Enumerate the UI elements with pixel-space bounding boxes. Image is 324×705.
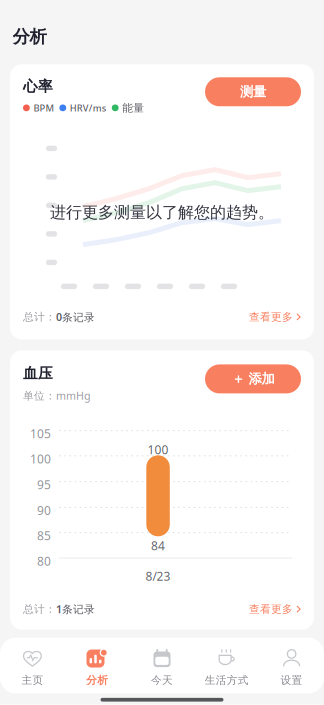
staticText: 90: [37, 502, 51, 518]
staticText: 测量: [240, 84, 266, 100]
staticText: 1条记录: [56, 602, 95, 616]
staticText: 分析: [86, 673, 108, 687]
staticText: 心率: [23, 77, 53, 95]
staticText: 查看更多: [249, 310, 293, 323]
staticText: 今天: [151, 673, 173, 687]
staticText: 84: [151, 538, 165, 553]
staticText: 血压: [23, 364, 53, 382]
staticText: ＋ 添加: [231, 371, 274, 387]
staticText: 总计：: [23, 310, 56, 323]
staticText: 进行更多测量以了解您的趋势。: [50, 203, 274, 222]
button[interactable]: 主页: [0, 637, 65, 694]
staticText: 100: [30, 451, 51, 467]
staticText: 80: [37, 553, 51, 569]
staticText: 0条记录: [56, 310, 95, 324]
button[interactable]: 查看更多: [249, 602, 301, 616]
staticText: 查看更多: [249, 602, 293, 616]
button[interactable]: 测量: [205, 77, 301, 106]
button[interactable]: 今天: [130, 637, 194, 694]
staticText: 主页: [21, 673, 43, 687]
staticText: 设置: [281, 673, 303, 687]
staticText: 100: [147, 442, 168, 457]
staticText: 总计：: [23, 602, 56, 616]
button[interactable]: 生活方式: [194, 637, 259, 694]
staticText: 能量: [122, 101, 144, 114]
staticText: 105: [30, 426, 51, 441]
button[interactable]: 查看更多: [249, 310, 301, 323]
staticText: BPM: [33, 102, 54, 114]
staticText: 85: [37, 528, 51, 543]
button[interactable]: ＋ 添加: [205, 364, 301, 393]
staticText: 生活方式: [205, 673, 249, 687]
staticText: 8/23: [145, 568, 170, 584]
staticText: 95: [37, 477, 51, 492]
button[interactable]: 设置: [259, 637, 324, 694]
staticText: 分析: [12, 26, 46, 47]
staticText: 单位：mmHg: [23, 388, 91, 403]
staticText: HRV/ms: [70, 102, 107, 114]
button[interactable]: 分析: [65, 637, 130, 694]
